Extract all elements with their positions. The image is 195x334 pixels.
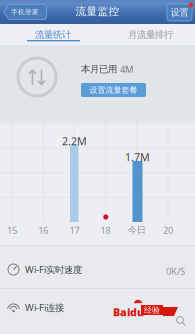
staticText: 18 [101,224,111,236]
staticText: 0K/S [166,265,185,277]
staticText: 1.7M [125,150,150,164]
staticText: 月流量排行 [128,29,173,40]
button[interactable]: 设置流量套餐 [81,83,146,97]
button[interactable]: 设置 [167,4,192,21]
staticText: 手机管家 [11,8,39,16]
button[interactable]: 流量统计 [0,24,98,45]
staticText: 4M [120,63,133,75]
staticText: 设置 [170,7,188,18]
button[interactable]: Wi-Fi实时速度 [0,246,195,288]
staticText: 流量统计 [35,29,71,40]
staticText: Wi-Fi实时速度 [25,263,82,276]
staticText: 设置流量套餐 [89,85,137,95]
staticText: 2.2M [62,134,87,148]
button[interactable]: 手机管家 [3,4,47,20]
staticText: 16 [38,224,48,236]
staticText: 17 [69,224,79,236]
staticText: Baidu [113,305,144,319]
staticText: 经验 [144,305,160,315]
staticText: Wi-Fi连接 [25,301,64,314]
button[interactable]: Wi-Fi连接 [0,289,195,334]
staticText: 流量监控 [75,5,119,18]
button[interactable]: 月流量排行 [98,24,195,45]
staticText: 20 [163,224,173,236]
staticText: 本月已用 [81,63,117,75]
staticText: 15 [7,224,17,236]
staticText: 今日 [128,224,146,236]
